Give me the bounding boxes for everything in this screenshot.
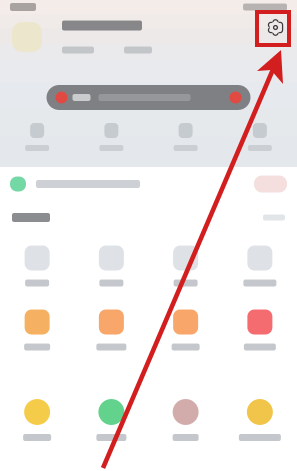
button[interactable]: App: [74, 388, 148, 452]
button[interactable]: [0, 167, 297, 201]
button[interactable]: More: [263, 214, 285, 220]
button[interactable]: Shortcut: [0, 122, 74, 152]
button[interactable]: Shortcut: [148, 122, 223, 152]
button[interactable]: Settings: [266, 14, 285, 60]
button[interactable]: App: [148, 298, 223, 362]
button[interactable]: App: [223, 234, 297, 298]
button[interactable]: App: [74, 298, 148, 362]
button[interactable]: [46, 85, 250, 110]
button[interactable]: App: [148, 234, 223, 298]
button[interactable]: App: [0, 388, 74, 452]
button[interactable]: Shortcut: [74, 122, 148, 152]
button[interactable]: App: [223, 388, 297, 452]
button[interactable]: App: [223, 298, 297, 362]
button[interactable]: App: [0, 298, 74, 362]
button[interactable]: App: [148, 388, 223, 452]
button[interactable]: App: [74, 234, 148, 298]
button[interactable]: Shortcut: [223, 122, 297, 152]
button[interactable]: App: [0, 234, 74, 298]
